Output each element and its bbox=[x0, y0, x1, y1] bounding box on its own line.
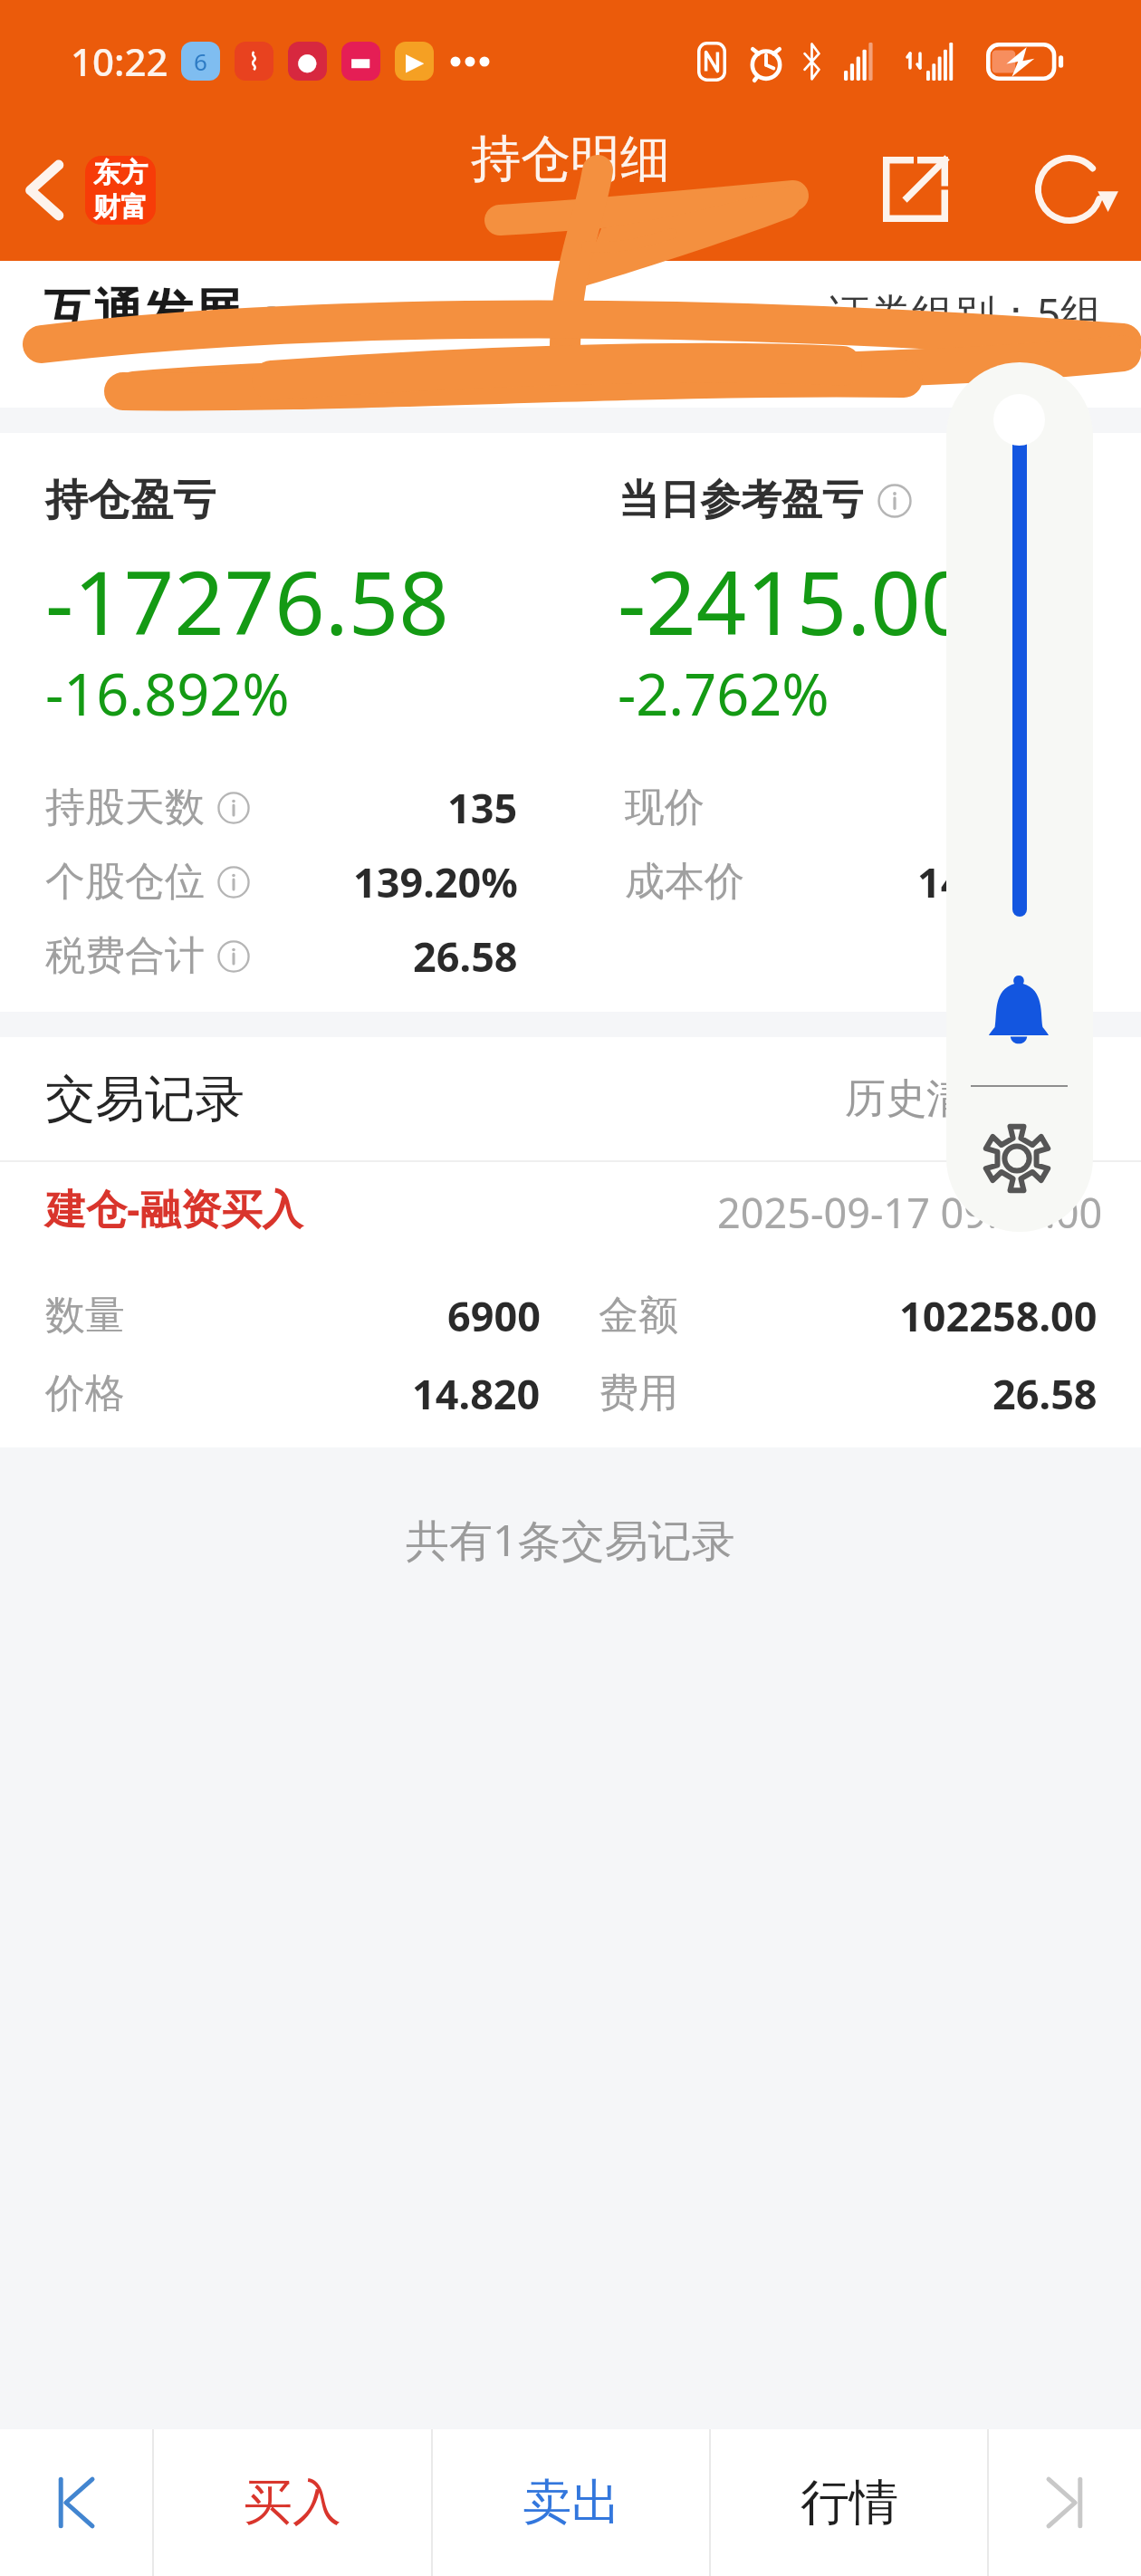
staticText: 成本价 bbox=[625, 857, 744, 907]
staticText: 税费合计 bbox=[45, 931, 205, 981]
button[interactable]: Last page bbox=[989, 2429, 1141, 2576]
staticText: 现价 bbox=[625, 783, 705, 832]
staticText: -2415.00 bbox=[618, 541, 972, 660]
button[interactable]: 历史清仓 bbox=[834, 1064, 1051, 1134]
button[interactable]: Refresh bbox=[1029, 139, 1128, 239]
staticText: 历史清仓 bbox=[845, 1073, 1008, 1125]
staticText: 300100 bbox=[263, 295, 375, 340]
staticText: ▬ bbox=[350, 48, 372, 75]
staticText: 14.820 bbox=[412, 1366, 541, 1421]
staticText: 102258.00 bbox=[899, 1288, 1098, 1343]
staticText: 14.820 bbox=[917, 854, 1046, 909]
button[interactable]: Share bbox=[866, 139, 965, 239]
staticText: -2.762% bbox=[618, 655, 829, 733]
staticText: 财富 bbox=[93, 190, 148, 225]
staticText: 个股仓位 bbox=[45, 857, 205, 907]
staticText: 6900 bbox=[447, 1288, 541, 1343]
staticText: 价格 bbox=[45, 1369, 125, 1418]
button[interactable]: First page bbox=[0, 2429, 152, 2576]
button[interactable]: Back bbox=[13, 143, 168, 237]
staticText: 当日参考盈亏 bbox=[618, 475, 863, 526]
staticText: 10:22 bbox=[71, 35, 168, 87]
staticText: 建仓-融资买入 bbox=[45, 1180, 303, 1235]
staticText: -17276.58 bbox=[45, 541, 449, 660]
staticText: ● bbox=[297, 48, 318, 75]
staticText: 卖出 bbox=[523, 2472, 620, 2533]
staticText: 交易记录 bbox=[45, 1068, 244, 1130]
staticText: 2025-09-17 09:30:00 bbox=[717, 1185, 1103, 1240]
button[interactable]: 买入 bbox=[154, 2429, 431, 2576]
staticText: ⌇ bbox=[248, 48, 260, 75]
staticText: 持仓盈亏 bbox=[45, 474, 216, 527]
staticText: 买入 bbox=[244, 2472, 341, 2533]
staticText: 26.58 bbox=[992, 1366, 1098, 1421]
button[interactable]: 卖出 bbox=[433, 2429, 709, 2576]
button[interactable]: Floating tools bbox=[946, 362, 1093, 1232]
staticText: 持股天数 bbox=[45, 783, 205, 832]
staticText: 数量 bbox=[45, 1291, 125, 1341]
staticText: 持仓明细 bbox=[471, 128, 670, 190]
staticText: ▶ bbox=[406, 48, 424, 75]
staticText: 135 bbox=[447, 780, 518, 835]
staticText: 费用 bbox=[599, 1369, 678, 1418]
staticText: 东方 bbox=[93, 156, 148, 190]
staticText: 共有1条交易记录 bbox=[406, 1510, 735, 1570]
staticText: 6 bbox=[194, 45, 207, 77]
staticText: 139.20% bbox=[353, 854, 518, 909]
button[interactable]: 行情 bbox=[711, 2429, 987, 2576]
staticText: 26.58 bbox=[413, 928, 518, 984]
staticText: 互通发展 bbox=[43, 282, 243, 344]
staticText: 行情 bbox=[801, 2472, 898, 2533]
staticText: 证券组别：5组 bbox=[829, 284, 1103, 341]
staticText: -16.892% bbox=[45, 655, 290, 733]
staticText: 金额 bbox=[599, 1291, 678, 1341]
